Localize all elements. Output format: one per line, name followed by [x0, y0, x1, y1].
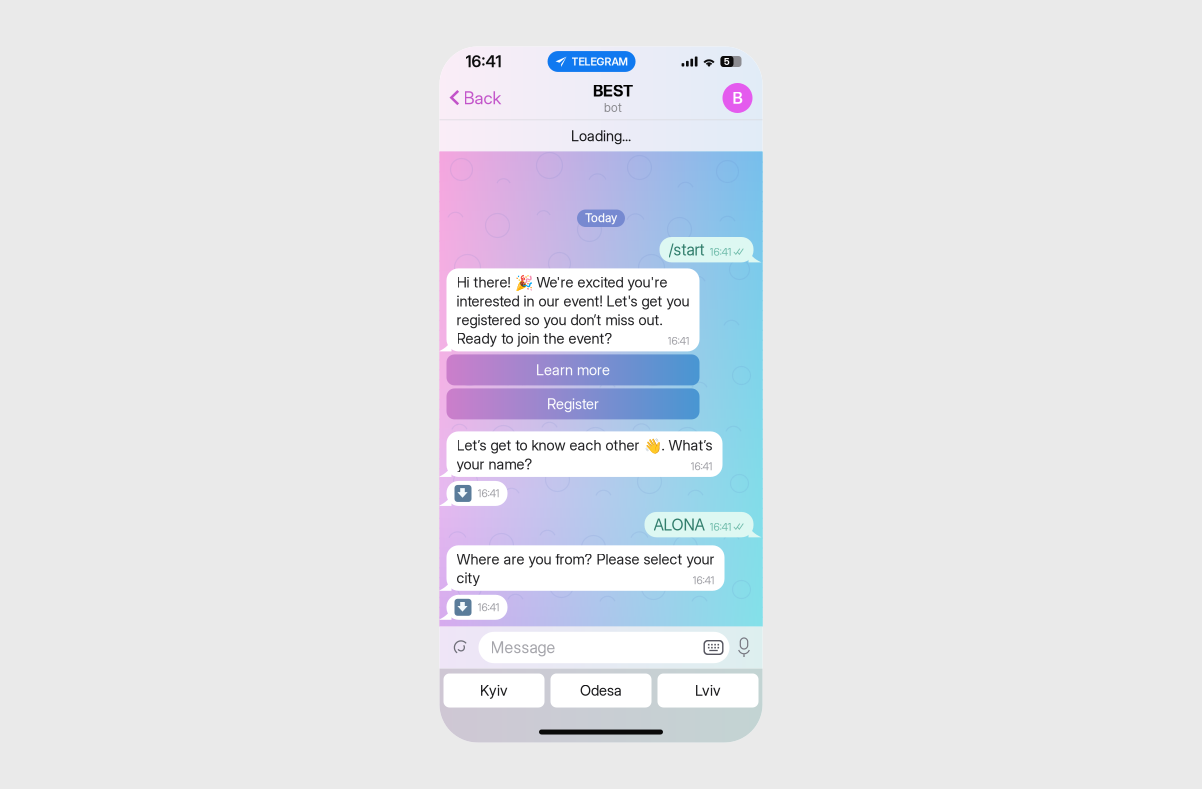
- staticText: ALONA: [653, 515, 704, 534]
- button[interactable]: Kyiv: [443, 673, 544, 707]
- staticText: registered so you don’t miss out.: [456, 311, 662, 329]
- staticText: B: [732, 88, 742, 108]
- staticText: 16:41: [692, 574, 714, 587]
- staticText: Loading...: [571, 127, 631, 145]
- staticText: BEST: [593, 81, 633, 100]
- staticText: 16:41: [667, 334, 689, 347]
- staticText: Back: [463, 87, 501, 108]
- staticText: Ready to join the event?: [456, 330, 612, 347]
- staticText: 16:41: [477, 487, 499, 500]
- staticText: Kyiv: [480, 682, 508, 699]
- button[interactable]: Attach: [443, 638, 478, 657]
- button[interactable]: Lviv: [657, 673, 758, 707]
- staticText: Odesa: [580, 682, 622, 699]
- button[interactable]: Register: [446, 388, 699, 419]
- staticText: Hi there! 🎉 We're excited you're: [456, 273, 667, 291]
- staticText: TELEGRAM: [571, 55, 627, 68]
- staticText: /start: [668, 240, 704, 259]
- staticText: bot: [604, 100, 622, 115]
- staticText: Learn more: [536, 361, 610, 379]
- staticText: Today: [585, 210, 617, 225]
- button[interactable]: Keyboard: [703, 640, 723, 655]
- button[interactable]: Back: [441, 79, 507, 116]
- staticText: 16:41: [477, 601, 499, 614]
- staticText: 16:41: [465, 52, 501, 71]
- button[interactable]: Bot profile: [722, 83, 752, 113]
- staticText: 16:41: [709, 245, 731, 258]
- staticText: Let’s get to know each other 👋. What’s: [456, 436, 712, 454]
- staticText: Where are you from? Please select your: [456, 550, 714, 568]
- button[interactable]: Learn more: [446, 354, 699, 385]
- staticText: city: [456, 569, 480, 587]
- staticText: interested in our event! Let's get you: [456, 292, 689, 310]
- staticText: your name?: [456, 455, 532, 473]
- staticText: Register: [547, 395, 599, 413]
- button[interactable]: Voice message: [729, 638, 758, 657]
- staticText: Lviv: [695, 682, 721, 699]
- staticText: Message: [490, 638, 555, 657]
- staticText: 16:41: [709, 520, 731, 533]
- staticText: 16:41: [690, 460, 712, 473]
- button[interactable]: Odesa: [550, 673, 651, 707]
- staticText: 5: [724, 56, 730, 67]
